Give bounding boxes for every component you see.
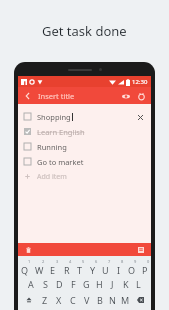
button[interactable]: 7 <box>99 259 112 276</box>
button[interactable]: J <box>106 276 119 292</box>
staticText: 12:30 <box>132 78 148 86</box>
staticText: N <box>109 294 116 306</box>
button[interactable]: Shift <box>20 292 38 308</box>
staticText: E <box>50 264 56 276</box>
staticText: H <box>96 278 103 290</box>
staticText: K <box>123 278 129 290</box>
staticText: P <box>142 264 148 276</box>
button[interactable]: 0 <box>138 259 151 276</box>
button[interactable]: S <box>38 276 52 292</box>
staticText: 4 <box>69 259 72 264</box>
button[interactable]: Reminder <box>135 90 147 102</box>
button[interactable]: N <box>106 292 119 308</box>
staticText: 8 <box>121 259 124 264</box>
button[interactable]: Shopping <box>18 109 151 124</box>
button[interactable]: 5 <box>73 259 86 276</box>
staticText: X <box>56 294 62 306</box>
button[interactable]: Learn English <box>18 124 151 139</box>
staticText: 2 <box>42 259 45 264</box>
staticText: J <box>111 278 114 290</box>
staticText: Go to market <box>37 157 84 167</box>
staticText: I <box>117 264 121 276</box>
button[interactable]: 8 <box>112 259 125 276</box>
staticText: 0 <box>147 259 150 264</box>
staticText: G <box>83 278 90 290</box>
button[interactable]: G <box>80 276 93 292</box>
button[interactable]: M <box>119 292 132 308</box>
staticText: C <box>70 294 76 306</box>
button[interactable]: X <box>52 292 66 308</box>
staticText: L <box>136 278 141 290</box>
staticText: Add item <box>37 172 67 182</box>
staticText: F <box>71 278 76 290</box>
staticText: Y <box>90 264 96 276</box>
staticText: U <box>102 264 109 276</box>
staticText: V <box>84 294 90 306</box>
button[interactable]: C <box>66 292 80 308</box>
button[interactable]: Delete <box>23 244 34 255</box>
staticText: S <box>43 278 48 290</box>
staticText: Learn English <box>37 127 85 137</box>
button[interactable]: 6 <box>86 259 99 276</box>
button[interactable]: V <box>80 292 93 308</box>
staticText: B <box>97 294 103 306</box>
button[interactable]: 1 <box>18 259 32 276</box>
staticText: Shopping <box>37 112 71 122</box>
staticText: 7 <box>108 259 111 264</box>
button[interactable]: 9 <box>125 259 138 276</box>
staticText: Get task done <box>42 22 127 40</box>
button[interactable]: Remove item <box>135 112 145 122</box>
staticText: R <box>64 264 70 276</box>
staticText: 1 <box>28 259 31 264</box>
staticText: T <box>77 264 83 276</box>
button[interactable]: Save note <box>135 244 146 255</box>
button[interactable]: 2 <box>32 259 46 276</box>
staticText: Q <box>21 264 29 276</box>
button[interactable]: K <box>119 276 132 292</box>
button[interactable]: D <box>52 276 66 292</box>
button[interactable]: F <box>66 276 80 292</box>
button[interactable]: Back <box>22 90 34 102</box>
staticText: Running <box>37 142 67 152</box>
button[interactable]: Preview <box>120 90 132 102</box>
button[interactable]: 3 <box>46 259 60 276</box>
staticText: M <box>121 294 130 306</box>
button[interactable]: L <box>132 276 145 292</box>
staticText: O <box>128 264 136 276</box>
staticText: W <box>35 264 44 276</box>
button[interactable]: Go to market <box>18 154 151 169</box>
button[interactable]: Backspace <box>132 292 149 308</box>
button[interactable]: H <box>93 276 106 292</box>
staticText: D <box>56 278 63 290</box>
staticText: 3 <box>56 259 59 264</box>
button[interactable]: Running <box>18 139 151 154</box>
button[interactable]: B <box>93 292 106 308</box>
staticText: A <box>28 278 34 290</box>
staticText: Z <box>42 294 48 306</box>
staticText: 9 <box>134 259 137 264</box>
staticText: 6 <box>95 259 98 264</box>
button[interactable]: Z <box>38 292 52 308</box>
staticText: Insert title <box>38 91 75 101</box>
button[interactable]: 4 <box>60 259 73 276</box>
button[interactable]: A <box>24 276 38 292</box>
button[interactable]: Add item <box>18 169 151 184</box>
staticText: 5 <box>82 259 85 264</box>
